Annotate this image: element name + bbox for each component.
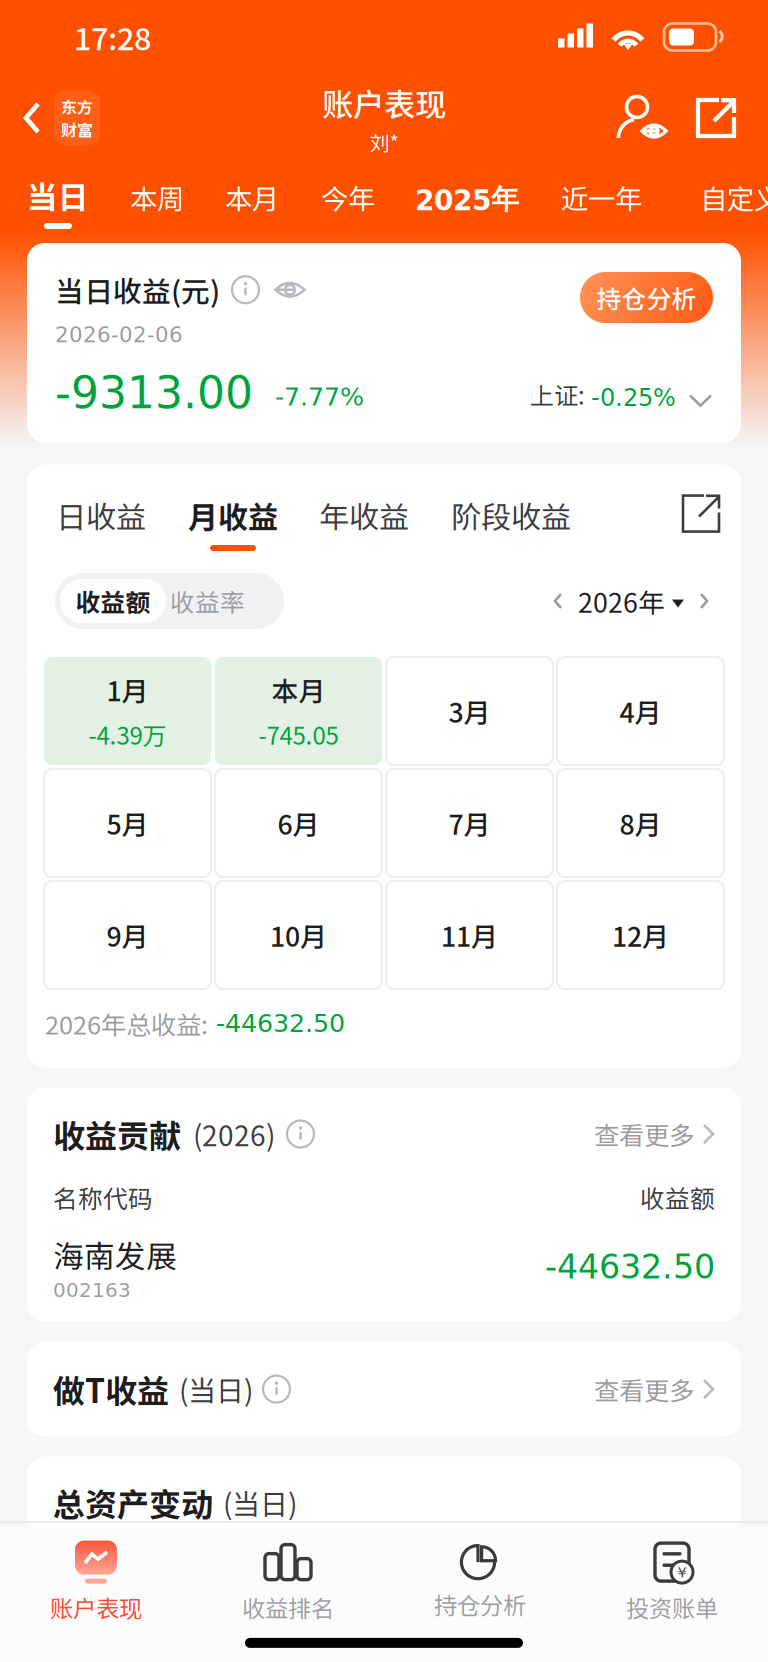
button[interactable]: 收益排名 xyxy=(192,1529,384,1630)
staticText: 6月 xyxy=(277,804,319,842)
button[interactable]: 7月 xyxy=(386,769,553,877)
staticText: 持仓分析 xyxy=(596,280,696,315)
button[interactable]: 2026年 xyxy=(578,582,684,620)
button[interactable]: 阶段收益 xyxy=(451,494,571,551)
button[interactable]: 日收益 xyxy=(56,494,146,551)
staticText: 4月 xyxy=(619,692,661,730)
staticText: 当日 xyxy=(27,173,89,217)
button[interactable]: 4月 xyxy=(557,657,724,765)
button[interactable]: 持仓分析 xyxy=(384,1532,576,1627)
button[interactable]: 1月 xyxy=(44,657,211,765)
staticText: (2026) xyxy=(193,1114,275,1154)
staticText: 2026年 xyxy=(578,582,665,620)
staticText: 账户表现 xyxy=(50,1590,142,1624)
button[interactable]: 账户表现 xyxy=(0,1529,192,1630)
button[interactable]: Previous year xyxy=(542,581,574,621)
staticText: 11月 xyxy=(441,916,498,954)
button[interactable]: 持仓分析 xyxy=(580,272,713,323)
staticText: 本月 xyxy=(271,670,325,709)
button[interactable]: 今年 xyxy=(321,162,375,232)
staticText: ¥ xyxy=(677,1564,686,1581)
button[interactable]: 当日 xyxy=(27,162,89,232)
staticText: 查看更多 xyxy=(594,1371,694,1407)
staticText: 总资产变动 xyxy=(53,1479,213,1526)
button[interactable]: 查看更多 xyxy=(594,1365,715,1413)
button[interactable]: 5月 xyxy=(44,769,211,877)
staticText: -745.05 xyxy=(258,717,338,752)
staticText: 收益额 xyxy=(640,1179,715,1215)
staticText: 日收益 xyxy=(56,494,146,537)
button[interactable]: 11月 xyxy=(386,881,553,989)
button[interactable]: 10月 xyxy=(215,881,382,989)
staticText: 收益额 xyxy=(75,583,150,619)
staticText: 17:28 xyxy=(74,15,151,59)
staticText: 收益贡献 xyxy=(53,1111,181,1157)
staticText: 月收益 xyxy=(188,494,278,537)
staticText: 10月 xyxy=(270,916,327,954)
staticText: 9月 xyxy=(106,916,148,954)
staticText: 东方 xyxy=(61,95,93,118)
staticText: 近一年 xyxy=(561,177,642,217)
staticText: -9313.00 xyxy=(55,367,253,418)
staticText: 12月 xyxy=(612,916,669,954)
button[interactable]: 年收益 xyxy=(319,494,409,551)
staticText: 3月 xyxy=(448,692,490,730)
staticText: 5月 xyxy=(106,804,148,842)
button[interactable]: 查看更多 xyxy=(594,1110,715,1158)
staticText: 002163 xyxy=(53,1278,131,1302)
staticText: 8月 xyxy=(619,804,661,842)
button[interactable]: 2025年 xyxy=(415,162,519,232)
staticText: 投资账单 xyxy=(626,1590,718,1624)
button[interactable]: 9月 xyxy=(44,881,211,989)
button[interactable]: 本月 xyxy=(215,657,382,765)
staticText: 做T收益 xyxy=(53,1366,169,1412)
button[interactable]: Back xyxy=(0,81,112,155)
staticText: 财富 xyxy=(61,118,93,141)
button[interactable]: Hide balances xyxy=(612,93,672,143)
staticText: 年收益 xyxy=(319,494,409,537)
staticText: 收益率 xyxy=(170,583,245,619)
button[interactable]: Share xyxy=(683,496,719,532)
button[interactable]: 12月 xyxy=(557,881,724,989)
staticText: 今年 xyxy=(321,177,375,217)
staticText: 名称代码 xyxy=(53,1179,153,1215)
button[interactable]: 自定义 xyxy=(700,162,768,232)
staticText: 账户表现 xyxy=(322,80,446,125)
staticText: 持仓分析 xyxy=(434,1587,526,1621)
button[interactable]: 8月 xyxy=(557,769,724,877)
button[interactable]: 本月 xyxy=(225,162,279,232)
button[interactable]: 近一年 xyxy=(561,162,642,232)
staticText: (当日) xyxy=(223,1482,297,1523)
button[interactable]: Next year xyxy=(688,581,720,621)
staticText: 刘* xyxy=(369,127,398,156)
button[interactable]: 6月 xyxy=(215,769,382,877)
staticText: 2026年总收益: xyxy=(45,1005,208,1042)
staticText: 本周 xyxy=(130,177,184,217)
staticText: 收益排名 xyxy=(242,1590,334,1624)
staticText: 海南发展 xyxy=(53,1232,177,1276)
button[interactable]: 3月 xyxy=(386,657,553,765)
staticText: 查看更多 xyxy=(594,1116,694,1152)
staticText: 1月 xyxy=(106,670,148,709)
staticText: 当日收益(元) xyxy=(55,269,220,310)
staticText: -0.25% xyxy=(591,384,676,411)
button[interactable]: 本周 xyxy=(130,162,184,232)
staticText: (当日) xyxy=(179,1369,253,1409)
staticText: -44632.50 xyxy=(545,1247,715,1286)
staticText: -4.39万 xyxy=(88,717,166,752)
button[interactable]: Share xyxy=(690,96,742,140)
button[interactable]: ¥ xyxy=(576,1529,768,1630)
staticText: 本月 xyxy=(225,177,279,217)
button[interactable]: 月收益 xyxy=(188,494,278,551)
staticText: 2025年 xyxy=(415,182,519,217)
staticText: 上证: xyxy=(530,377,585,412)
staticText: 2026-02-06 xyxy=(55,322,183,347)
staticText: 自定义 xyxy=(700,177,768,217)
staticText: 7月 xyxy=(448,804,490,842)
staticText: -44632.50 xyxy=(216,1009,345,1038)
staticText: -7.77% xyxy=(275,382,364,412)
staticText: 阶段收益 xyxy=(451,494,571,537)
